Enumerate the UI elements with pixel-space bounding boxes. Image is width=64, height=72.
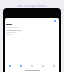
button[interactable]: Tab 2	[15, 63, 26, 69]
button[interactable]: Tab 5	[48, 63, 59, 69]
button[interactable]: Tab 4	[37, 63, 48, 69]
button[interactable]: Tab 3	[26, 63, 37, 69]
button[interactable]: Tab 1	[5, 63, 15, 69]
staticText: see my app demo	[17, 3, 47, 8]
